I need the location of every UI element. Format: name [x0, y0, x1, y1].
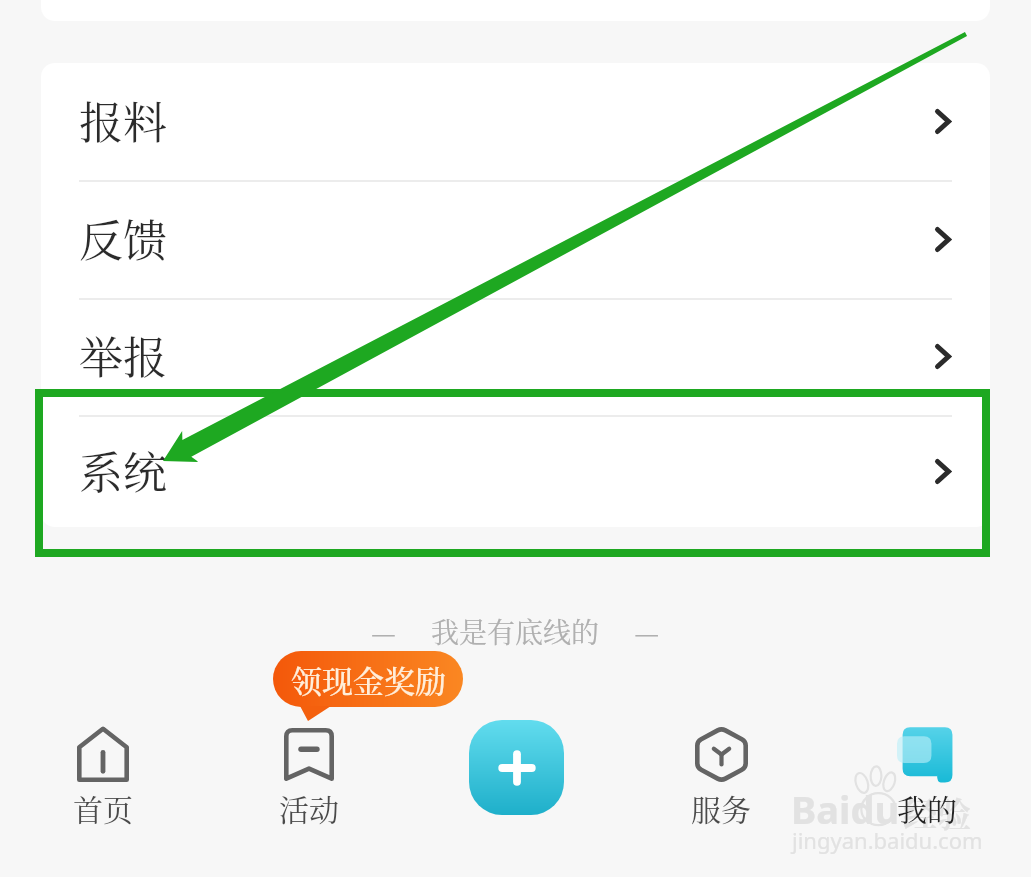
staticText: jingyan.baidu.com: [792, 825, 983, 855]
button[interactable]: Services: [665, 722, 777, 832]
staticText: Baidu: [791, 783, 900, 835]
button[interactable]: Profile: [871, 722, 983, 832]
other: Services: [695, 722, 748, 786]
other: Profile: [899, 722, 955, 786]
staticText: 首页: [73, 786, 133, 829]
staticText: 服务: [691, 786, 751, 829]
staticText: 反馈: [79, 206, 167, 269]
staticText: 活动: [279, 786, 339, 829]
button[interactable]: 反馈: [41, 180, 990, 298]
staticText: 领现金奖励: [291, 657, 446, 702]
button[interactable]: Add post: [469, 720, 564, 815]
button[interactable]: 报料: [41, 63, 990, 180]
staticText: 我的: [897, 786, 957, 829]
button[interactable]: 领现金奖励: [273, 651, 463, 707]
other: Activity: [284, 722, 334, 786]
button[interactable]: 举报: [41, 298, 990, 415]
staticText: 经验: [903, 788, 971, 837]
button[interactable]: 系统: [41, 415, 990, 527]
staticText: 系统: [79, 438, 167, 501]
staticText: 举报: [79, 323, 167, 386]
staticText: — 我是有底线的 —: [371, 611, 660, 651]
staticText: 报料: [79, 88, 167, 151]
button[interactable]: Home: [47, 722, 159, 832]
other: Home: [77, 722, 129, 786]
button[interactable]: Activity: [253, 722, 365, 832]
